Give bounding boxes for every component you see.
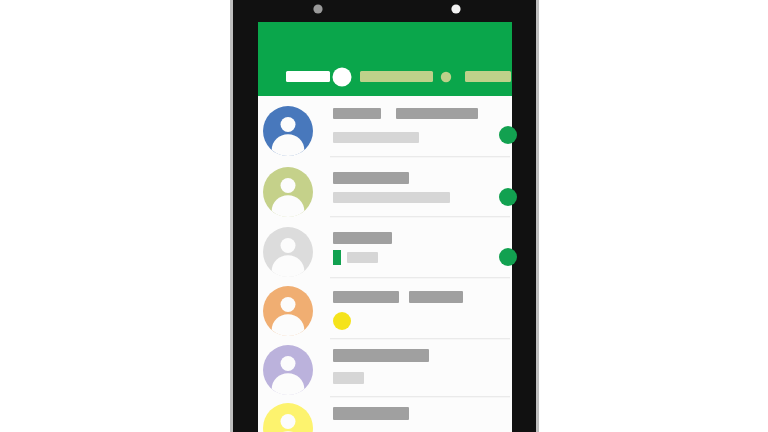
button[interactable]: Chat list app on phone — [0, 0, 768, 432]
